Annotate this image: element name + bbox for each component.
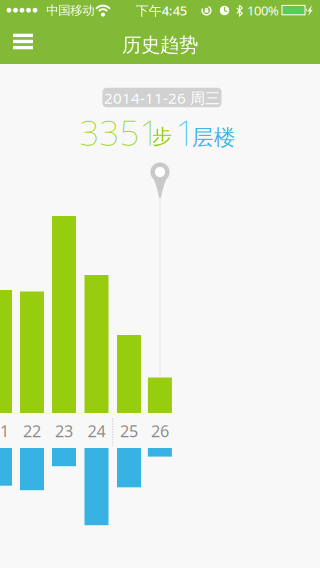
staticText: 层楼 [192,124,236,151]
staticText: 21 [0,420,9,442]
staticText: 1 [175,109,195,156]
staticText: 2014-11-26 周三 [104,87,220,108]
staticText: 3351 [80,109,160,156]
button[interactable] [0,20,44,64]
button[interactable] [102,88,221,107]
staticText: 24 [87,420,105,442]
staticText: 100% [247,1,279,19]
staticText: 23 [55,420,73,442]
staticText: 25 [120,420,138,442]
staticText: 步 [152,124,172,149]
staticText: 中国移动 [46,2,94,18]
staticText: 下午4:45 [136,1,187,19]
staticText: 26 [151,420,169,442]
staticText: 22 [23,420,41,442]
staticText: 历史趋势 [122,33,198,57]
